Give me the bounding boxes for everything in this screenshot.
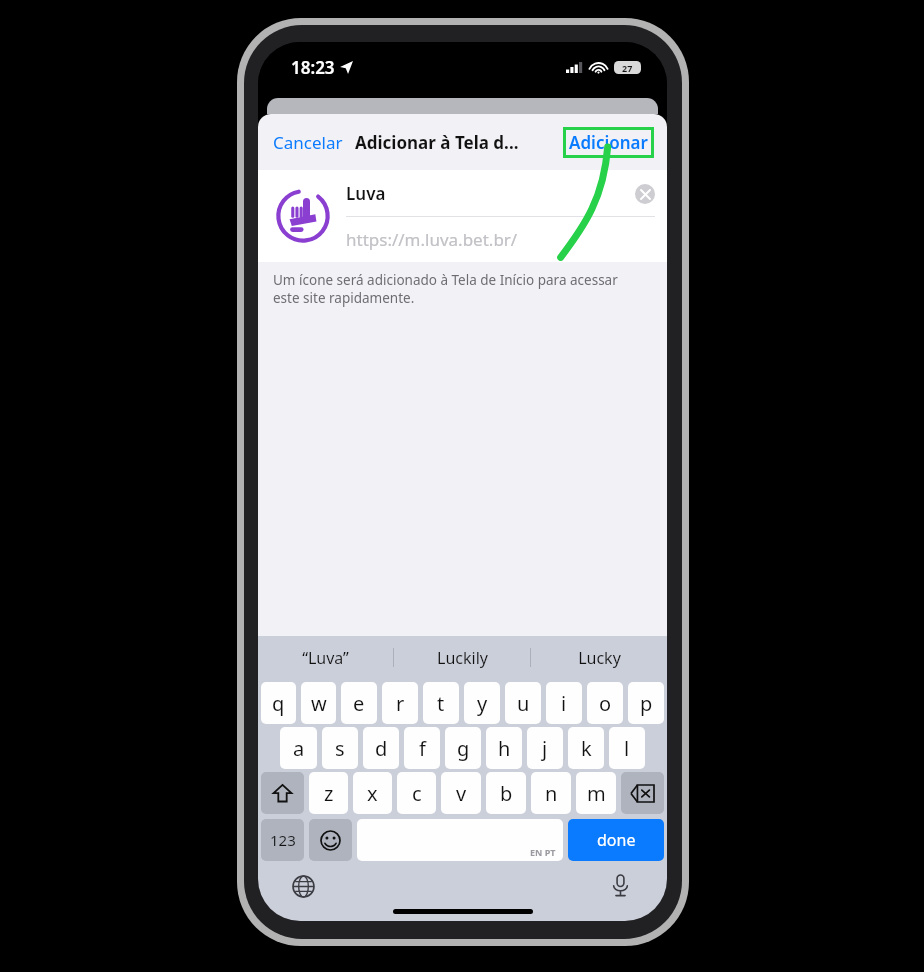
button[interactable]: z <box>309 772 348 814</box>
button[interactable]: Mudar idioma <box>290 873 316 899</box>
button[interactable]: Luckily <box>394 636 530 679</box>
staticText: https://m.luva.bet.br/ <box>346 228 518 251</box>
staticText: v <box>456 780 467 807</box>
button[interactable]: Emoji <box>309 819 352 861</box>
button[interactable]: m <box>576 772 616 814</box>
button[interactable]: done <box>568 819 664 861</box>
button[interactable]: d <box>363 727 399 769</box>
button[interactable]: s <box>322 727 358 769</box>
button[interactable]: e <box>341 682 377 724</box>
staticText: c <box>412 780 422 807</box>
staticText: Luva <box>346 182 386 205</box>
staticText: Luckily <box>437 647 488 669</box>
staticText: e <box>353 690 365 717</box>
button[interactable]: y <box>464 682 500 724</box>
button[interactable]: “Luva” <box>258 636 393 679</box>
staticText: n <box>545 780 558 807</box>
button[interactable]: Shift <box>261 772 304 814</box>
staticText: s <box>335 735 345 762</box>
staticText: r <box>396 690 405 717</box>
button[interactable]: o <box>587 682 623 724</box>
staticText: Adicionar à Tela d... <box>355 131 519 154</box>
button[interactable]: Apagar <box>621 772 664 814</box>
staticText: p <box>640 690 653 717</box>
staticText: f <box>419 735 426 762</box>
staticText: o <box>599 690 612 717</box>
button[interactable]: g <box>445 727 481 769</box>
staticText: b <box>500 780 513 807</box>
staticText: “Luva” <box>302 647 349 669</box>
staticText: q <box>272 690 285 717</box>
button[interactable]: 123 <box>261 819 304 861</box>
staticText: Adicionar <box>569 131 648 154</box>
button[interactable]: c <box>397 772 436 814</box>
button[interactable]: f <box>404 727 440 769</box>
staticText: 18:23 <box>291 56 335 79</box>
button[interactable]: q <box>261 682 296 724</box>
staticText: x <box>367 780 378 807</box>
staticText: m <box>587 780 606 807</box>
staticText: Cancelar <box>273 131 343 154</box>
staticText: 123 <box>270 830 296 850</box>
staticText: l <box>624 735 630 762</box>
button[interactable]: Espaço <box>357 819 563 861</box>
button[interactable]: j <box>527 727 563 769</box>
staticText: Lucky <box>578 647 621 669</box>
button[interactable]: l <box>609 727 645 769</box>
staticText: EN PT <box>530 846 556 858</box>
button[interactable]: Lucky <box>531 636 667 679</box>
staticText: k <box>581 735 592 762</box>
staticText: t <box>437 690 445 717</box>
button[interactable]: x <box>353 772 392 814</box>
staticText: Um ícone será adicionado à Tela de Iníci… <box>273 271 632 307</box>
staticText: w <box>311 690 327 717</box>
staticText: g <box>457 735 470 762</box>
staticText: h <box>498 735 511 762</box>
staticText: y <box>477 690 488 717</box>
staticText: 27 <box>622 62 633 74</box>
staticText: j <box>542 735 548 762</box>
button[interactable]: n <box>531 772 571 814</box>
button[interactable]: t <box>423 682 459 724</box>
button[interactable]: b <box>486 772 526 814</box>
staticText: u <box>517 690 530 717</box>
button[interactable]: h <box>486 727 522 769</box>
staticText: a <box>293 735 305 762</box>
button[interactable]: r <box>382 682 418 724</box>
button[interactable]: w <box>301 682 336 724</box>
button[interactable]: Limpar <box>635 184 655 204</box>
button[interactable]: Cancelar <box>271 125 345 160</box>
button[interactable]: a <box>280 727 317 769</box>
button[interactable]: v <box>441 772 481 814</box>
button[interactable]: i <box>546 682 582 724</box>
staticText: d <box>375 735 388 762</box>
staticText: i <box>561 690 567 717</box>
button[interactable]: Adicionar <box>563 127 654 158</box>
button[interactable]: Ditado <box>607 873 633 899</box>
staticText: z <box>324 780 334 807</box>
staticText: done <box>597 829 636 851</box>
button[interactable]: k <box>568 727 604 769</box>
button[interactable]: u <box>505 682 541 724</box>
button[interactable]: p <box>628 682 664 724</box>
